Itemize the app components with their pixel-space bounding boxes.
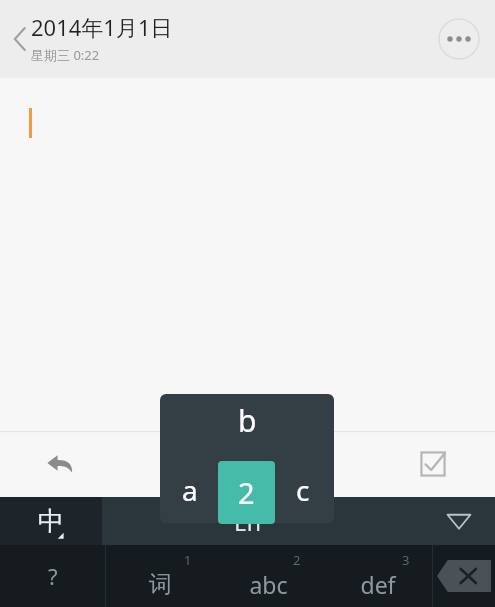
button[interactable]: 2: [214, 545, 323, 607]
staticText: 2: [238, 473, 255, 512]
staticText: 2: [293, 551, 301, 569]
staticText: 中: [38, 505, 64, 538]
staticText: 2014年1月1日: [31, 12, 173, 42]
button[interactable]: En: [158, 497, 338, 545]
staticText: En: [234, 506, 262, 537]
button[interactable]: Insert image: [247, 431, 371, 497]
button[interactable]: b: [160, 394, 334, 523]
staticText: 星期三 0:22: [31, 46, 100, 64]
button[interactable]: More options: [437, 17, 481, 61]
staticText: 词: [149, 570, 172, 599]
button[interactable]: Back: [4, 25, 32, 53]
staticText: 1: [184, 551, 192, 569]
button[interactable]: Delete: [433, 545, 495, 607]
staticText: 3: [402, 551, 410, 569]
button[interactable]: 2: [218, 461, 275, 524]
staticText: b: [238, 400, 257, 441]
button[interactable]: ?: [0, 545, 105, 607]
staticText: def: [360, 569, 396, 600]
staticText: c: [296, 471, 310, 509]
staticText: a: [182, 471, 198, 509]
button[interactable]: Chinese input: [0, 497, 102, 545]
staticText: abc: [249, 569, 288, 600]
button[interactable]: 1: [106, 545, 214, 607]
button[interactable]: Checklist: [371, 431, 495, 497]
staticText: ?: [48, 561, 58, 591]
button[interactable]: Hide keyboard: [437, 499, 481, 543]
button[interactable]: Undo: [0, 431, 123, 497]
button[interactable]: Redo: [123, 431, 247, 497]
button[interactable]: 3: [323, 545, 432, 607]
